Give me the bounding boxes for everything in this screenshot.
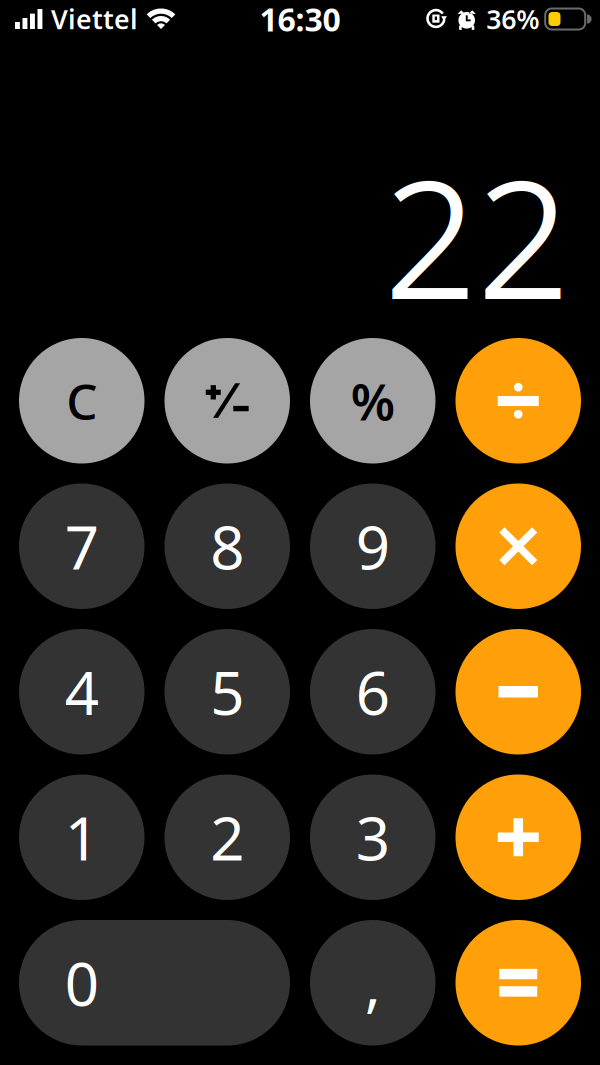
button[interactable]: 7 (19, 483, 144, 609)
button[interactable]: 0 (19, 920, 290, 1045)
staticText: Viettel (51, 1, 138, 37)
button[interactable]: 3 (310, 774, 435, 900)
button[interactable]: 4 (19, 629, 144, 754)
staticText: , (365, 943, 381, 1023)
button[interactable]: 9 (310, 483, 435, 609)
button[interactable]: 5 (164, 629, 290, 754)
button[interactable]: 8 (164, 483, 290, 609)
staticText: 9 (356, 506, 390, 586)
staticText: 16:30 (259, 0, 340, 40)
button[interactable]: , (310, 920, 435, 1045)
staticText: C (66, 368, 97, 433)
staticText: 2 (210, 797, 244, 877)
button[interactable]: Equals (455, 920, 581, 1045)
button[interactable]: 6 (310, 629, 435, 754)
button[interactable]: Plus minus (164, 338, 290, 463)
staticText: 1 (65, 797, 99, 877)
button[interactable]: Minus (455, 629, 581, 754)
staticText: 4 (65, 652, 99, 732)
staticText: 8 (210, 506, 244, 586)
button[interactable]: Plus (455, 774, 581, 900)
staticText: 36% (486, 1, 539, 37)
staticText: 0 (65, 943, 99, 1023)
button[interactable]: 1 (19, 774, 144, 900)
staticText: 5 (210, 652, 244, 732)
staticText: 7 (65, 506, 99, 586)
button[interactable]: C (19, 338, 144, 463)
button[interactable]: Multiply (455, 483, 581, 609)
staticText: 22 (384, 125, 570, 347)
staticText: 6 (356, 652, 390, 732)
staticText: 3 (356, 797, 390, 877)
button[interactable]: Divide (455, 338, 581, 463)
staticText: % (351, 367, 395, 434)
button[interactable]: % (310, 338, 435, 463)
button[interactable]: 2 (164, 774, 290, 900)
